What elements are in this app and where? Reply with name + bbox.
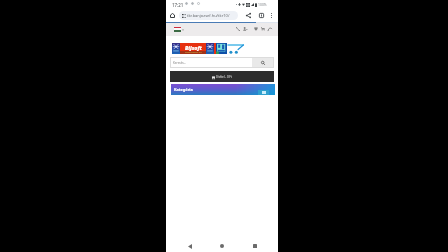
staticText: Keresés... bbox=[173, 61, 187, 65]
staticText: Kategória bbox=[174, 87, 193, 92]
button[interactable]: Toggle category menu bbox=[258, 90, 269, 95]
button[interactable]: Share bbox=[243, 10, 254, 21]
staticText: www.bijsoft.hu bbox=[185, 50, 202, 53]
staticText: Bijsoft bbox=[185, 44, 202, 51]
staticText: 100% bbox=[258, 2, 267, 7]
button[interactable]: More options bbox=[266, 10, 277, 21]
button[interactable]: Home bbox=[167, 10, 178, 21]
button[interactable]: Keresés... bbox=[170, 57, 252, 68]
button[interactable]: Advertisement banner bbox=[172, 43, 227, 54]
button[interactable]: Wishlist bbox=[253, 24, 259, 33]
button[interactable]: Call bbox=[235, 24, 241, 33]
staticText: 0 tétel - 0 Ft bbox=[216, 75, 232, 79]
button[interactable]: 0 tétel - 0 Ft bbox=[170, 71, 274, 82]
button[interactable]: Share page bbox=[267, 24, 273, 33]
button[interactable]: Language bbox=[174, 25, 184, 34]
button[interactable]: Search bbox=[252, 57, 274, 68]
button[interactable]: Account bbox=[242, 24, 248, 33]
button[interactable]: Switch tabs bbox=[256, 10, 267, 21]
staticText: 17:21 bbox=[172, 2, 184, 8]
staticText: tkr.banjozsef.hu/tkr10/ bbox=[187, 13, 230, 18]
button[interactable]: Recent apps bbox=[248, 239, 262, 252]
button[interactable]: Kategória bbox=[171, 84, 275, 95]
button[interactable]: tkr.banjozsef.hu/tkr10/ bbox=[179, 11, 238, 20]
button[interactable]: Cart bbox=[260, 24, 266, 33]
button[interactable]: Home bbox=[215, 239, 229, 252]
button[interactable]: Back bbox=[183, 239, 197, 252]
